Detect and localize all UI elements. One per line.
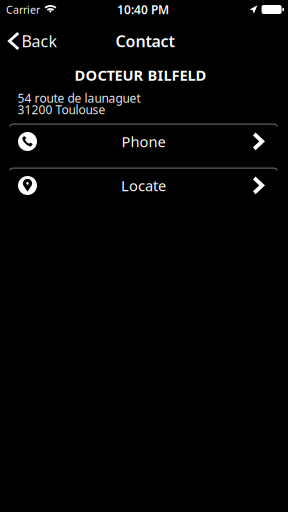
- staticText: Phone: [121, 132, 165, 151]
- staticText: 54 route de launaguet: [18, 90, 141, 106]
- staticText: Contact: [115, 30, 174, 52]
- staticText: Back: [21, 30, 57, 52]
- staticText: 31200 Toulouse: [18, 102, 106, 117]
- button[interactable]: Locate: [9, 169, 278, 205]
- staticText: DOCTEUR BILFELD: [74, 65, 206, 85]
- button[interactable]: Back: [0, 26, 63, 56]
- staticText: Locate: [121, 176, 166, 195]
- button[interactable]: Phone: [9, 125, 278, 161]
- staticText: Carrier: [6, 2, 40, 17]
- staticText: 10:40 PM: [117, 1, 169, 17]
